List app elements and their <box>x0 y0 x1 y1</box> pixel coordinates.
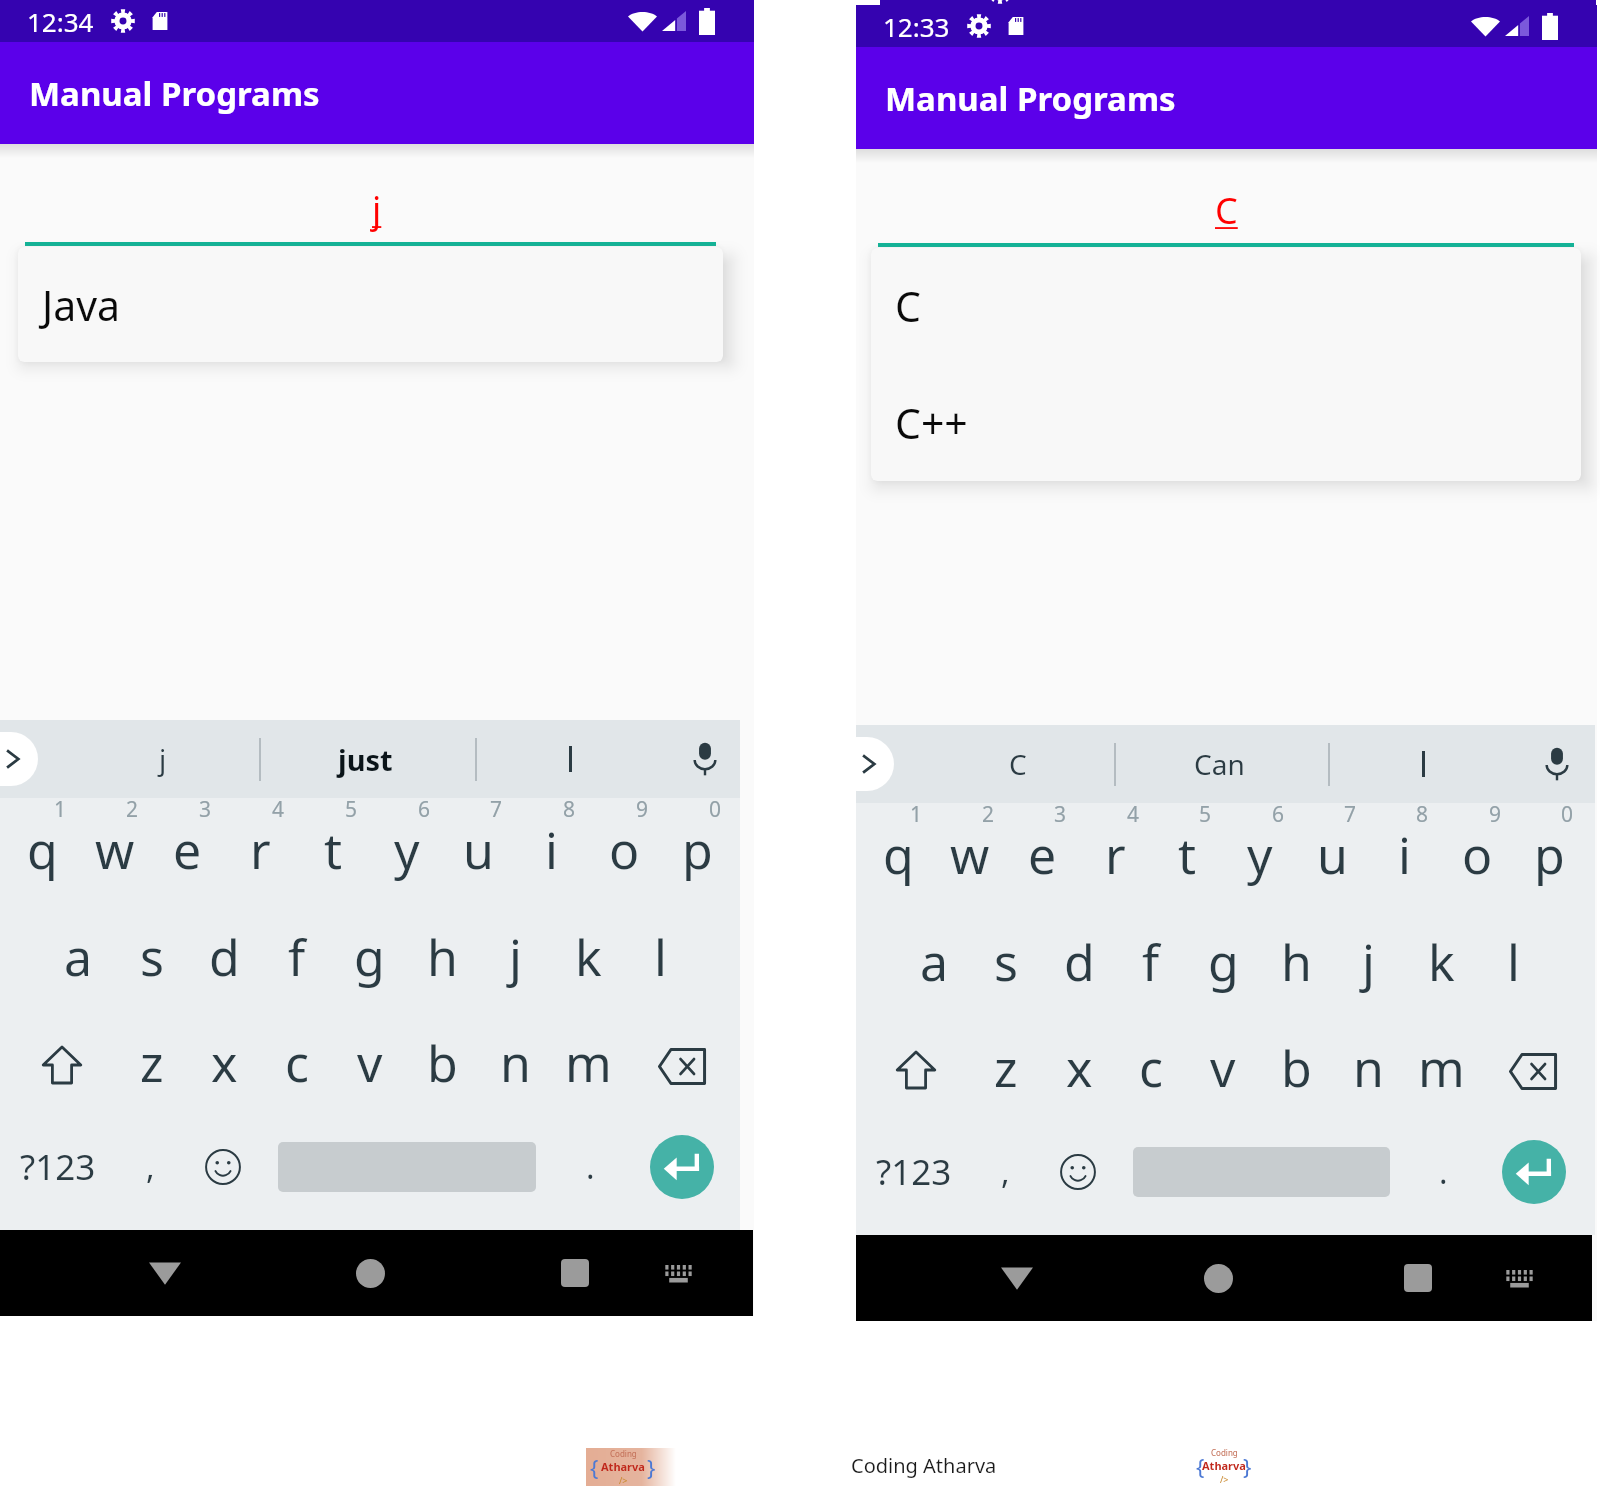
button[interactable]: t <box>1151 803 1223 907</box>
button[interactable]: j <box>479 905 552 1009</box>
button[interactable]: h <box>406 905 479 1009</box>
button[interactable]: c <box>1115 1016 1187 1120</box>
button[interactable]: x <box>188 1011 261 1115</box>
button[interactable]: u <box>1296 803 1368 907</box>
staticText: t <box>1178 821 1197 889</box>
button[interactable]: a <box>898 910 970 1014</box>
button[interactable]: Suggestion Can <box>1149 725 1289 803</box>
button[interactable]: z <box>970 1016 1042 1120</box>
staticText: } <box>647 1452 656 1482</box>
button[interactable]: e <box>1006 803 1078 907</box>
staticText: { <box>590 1452 599 1482</box>
button[interactable]: Suggestion I <box>1353 725 1493 803</box>
button[interactable]: r <box>1079 803 1151 907</box>
button[interactable]: q <box>862 803 934 907</box>
button[interactable]: Home <box>337 1240 403 1306</box>
button[interactable]: Switch keyboard <box>1486 1245 1552 1311</box>
button[interactable]: m <box>1405 1016 1477 1120</box>
staticText: m <box>565 1029 612 1097</box>
button[interactable]: y <box>1224 803 1296 907</box>
button[interactable]: w <box>934 803 1006 907</box>
button[interactable]: z <box>115 1011 188 1115</box>
button[interactable]: Expand suggestions <box>0 732 38 786</box>
button[interactable]: Emoji <box>1045 1120 1111 1224</box>
button[interactable]: Backspace <box>643 1011 716 1115</box>
staticText: 12:34 <box>27 4 94 39</box>
button[interactable]: k <box>552 905 625 1009</box>
button[interactable]: Shift <box>880 1016 952 1120</box>
button[interactable]: Shift <box>25 1011 98 1115</box>
button[interactable]: m <box>552 1011 625 1115</box>
button[interactable]: t <box>297 798 370 902</box>
button[interactable]: u <box>442 798 515 902</box>
button[interactable]: Space <box>1133 1120 1390 1224</box>
button[interactable]: f <box>1115 910 1187 1014</box>
button[interactable]: Suggestion C <box>948 725 1088 803</box>
button[interactable]: x <box>1043 1016 1115 1120</box>
button[interactable]: s <box>970 910 1042 1014</box>
button[interactable]: C <box>871 248 1581 364</box>
button[interactable]: b <box>406 1011 479 1115</box>
button[interactable]: , <box>972 1120 1038 1224</box>
button[interactable]: h <box>1260 910 1332 1014</box>
button[interactable]: Backspace <box>1495 1016 1567 1120</box>
button[interactable]: i <box>1368 803 1440 907</box>
button[interactable]: j <box>1332 910 1404 1014</box>
button[interactable]: . <box>557 1115 623 1219</box>
button[interactable]: Back <box>132 1240 198 1306</box>
button[interactable]: Home <box>1185 1245 1251 1311</box>
button[interactable]: c <box>260 1011 333 1115</box>
button[interactable]: p <box>661 798 734 902</box>
button[interactable]: Voice input <box>1527 728 1587 800</box>
button[interactable]: e <box>151 798 224 902</box>
button[interactable]: l <box>624 905 697 1009</box>
button[interactable]: C++ <box>871 364 1581 481</box>
button[interactable]: Suggestion j <box>93 720 233 798</box>
button[interactable]: n <box>479 1011 552 1115</box>
button[interactable]: Expand suggestions <box>830 737 894 791</box>
button[interactable]: l <box>1477 910 1549 1014</box>
button[interactable]: o <box>588 798 661 902</box>
button[interactable]: Enter <box>1486 1120 1582 1224</box>
button[interactable]: w <box>78 798 151 902</box>
button[interactable]: o <box>1441 803 1513 907</box>
button[interactable]: , <box>117 1115 183 1219</box>
button[interactable]: Voice input <box>675 723 735 795</box>
button[interactable]: a <box>42 905 115 1009</box>
button[interactable]: Emoji <box>190 1115 256 1219</box>
button[interactable]: i <box>515 798 588 902</box>
button[interactable]: Switch keyboard <box>645 1240 711 1306</box>
button[interactable]: d <box>188 905 261 1009</box>
button[interactable]: g <box>333 905 406 1009</box>
button[interactable]: y <box>370 798 443 902</box>
button[interactable]: Suggestion I <box>500 720 640 798</box>
button[interactable]: v <box>333 1011 406 1115</box>
button[interactable]: q <box>6 798 79 902</box>
button[interactable]: . <box>1410 1120 1476 1224</box>
staticText: Atharva <box>1202 1458 1246 1473</box>
button[interactable]: Enter <box>634 1115 730 1219</box>
button[interactable]: r <box>224 798 297 902</box>
button[interactable]: k <box>1405 910 1477 1014</box>
button[interactable]: Recents <box>542 1240 608 1306</box>
button[interactable]: ?123 <box>3 1115 113 1219</box>
button[interactable]: g <box>1187 910 1259 1014</box>
button[interactable]: v <box>1187 1016 1259 1120</box>
button[interactable]: d <box>1043 910 1115 1014</box>
button[interactable]: Java <box>18 247 723 362</box>
button[interactable]: Space <box>278 1115 536 1219</box>
staticText: 9 <box>1489 800 1502 829</box>
button[interactable]: b <box>1260 1016 1332 1120</box>
button[interactable]: f <box>260 905 333 1009</box>
button[interactable]: Suggestion just <box>295 720 435 798</box>
staticText: m <box>1418 1034 1465 1102</box>
staticText: 1 <box>54 795 67 824</box>
button[interactable]: Recents <box>1385 1245 1451 1311</box>
button[interactable]: n <box>1332 1016 1404 1120</box>
button[interactable]: s <box>115 905 188 1009</box>
button[interactable]: p <box>1513 803 1585 907</box>
staticText: k <box>1428 928 1455 996</box>
button[interactable]: ?123 <box>859 1120 969 1224</box>
staticText: l <box>654 923 667 991</box>
button[interactable]: Back <box>984 1245 1050 1311</box>
